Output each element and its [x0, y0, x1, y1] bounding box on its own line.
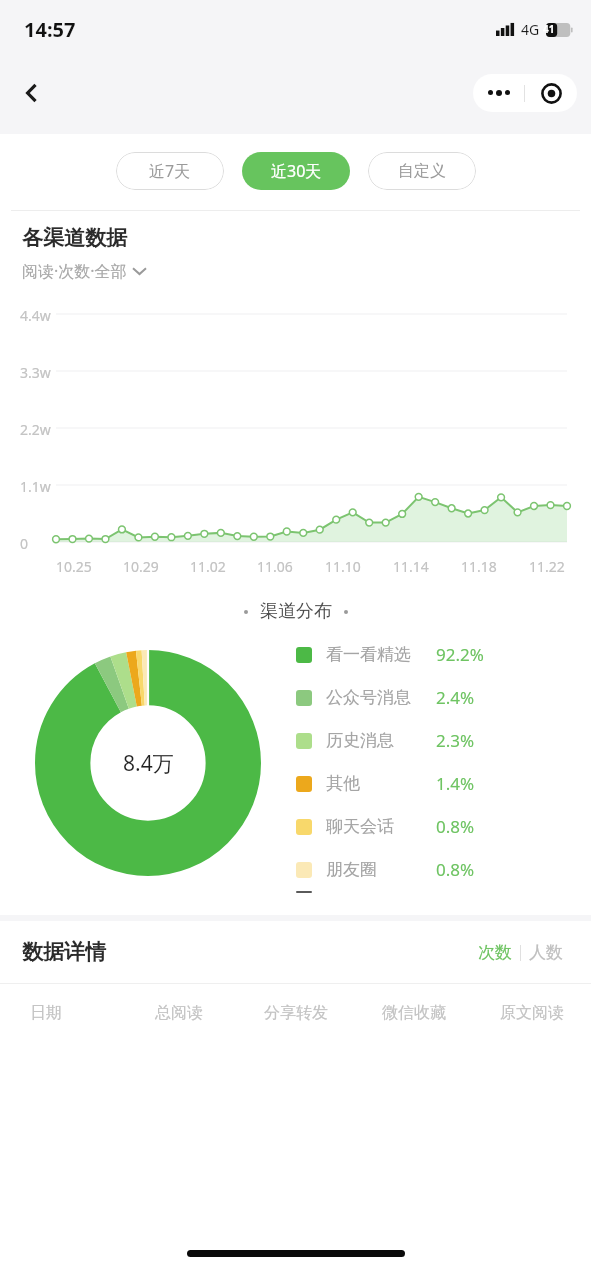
staticText: 公众号消息: [326, 687, 411, 708]
staticText: 10.29: [123, 557, 159, 576]
button[interactable]: 近7天: [116, 152, 224, 190]
staticText: 数据详情: [22, 939, 106, 965]
staticText: 聊天会话: [326, 816, 394, 837]
staticText: 近30天: [271, 160, 322, 182]
staticText: 3.3w: [20, 363, 51, 382]
button[interactable]: Back: [10, 71, 54, 115]
staticText: 8.4万: [123, 749, 174, 778]
staticText: 次数: [478, 942, 512, 963]
staticText: 41: [543, 22, 555, 36]
staticText: 0.8%: [436, 815, 475, 838]
button[interactable]: 朋友圈: [296, 848, 591, 891]
staticText: 11.18: [461, 557, 497, 576]
staticText: 看一看精选: [326, 644, 411, 665]
staticText: 11.10: [325, 557, 361, 576]
staticText: 阅读·次数·全部: [22, 260, 127, 282]
staticText: 历史消息: [326, 730, 394, 751]
staticText: 其他: [326, 773, 360, 794]
button[interactable]: 阅读·次数·全部: [22, 260, 146, 282]
button[interactable]: 聊天会话: [296, 805, 591, 848]
staticText: 总阅读: [155, 1003, 203, 1023]
button[interactable]: 其他: [296, 762, 591, 805]
staticText: 朋友圈: [326, 859, 377, 880]
staticText: 近7天: [149, 160, 191, 182]
button[interactable]: 公众号消息: [296, 676, 591, 719]
staticText: 1.4%: [436, 772, 475, 795]
button[interactable]: 历史消息: [296, 719, 591, 762]
button[interactable]: More: [473, 74, 524, 112]
staticText: 日期: [30, 1003, 62, 1023]
staticText: 0.8%: [436, 858, 475, 881]
staticText: 92.2%: [436, 643, 484, 666]
staticText: 渠道分布: [260, 600, 332, 623]
staticText: 11.02: [190, 557, 226, 576]
staticText: 11.14: [393, 557, 429, 576]
staticText: 2.2w: [20, 420, 51, 439]
staticText: 14:57: [24, 16, 76, 43]
staticText: 分享转发: [264, 1003, 328, 1023]
staticText: 10.25: [56, 557, 92, 576]
staticText: 2.4%: [436, 686, 475, 709]
button[interactable]: Close: [525, 74, 577, 112]
button[interactable]: 看一看精选: [296, 633, 591, 676]
staticText: 4G: [521, 20, 540, 39]
button[interactable]: 自定义: [368, 152, 476, 190]
staticText: 原文阅读: [500, 1003, 564, 1023]
button[interactable]: 人数: [521, 942, 571, 963]
staticText: 1.1w: [20, 477, 51, 496]
button[interactable]: 近30天: [242, 152, 350, 190]
staticText: 自定义: [398, 161, 446, 181]
button[interactable]: 搜一搜: [296, 891, 591, 893]
button[interactable]: 次数: [470, 942, 520, 963]
staticText: 11.22: [529, 557, 565, 576]
staticText: 各渠道数据: [22, 225, 127, 251]
staticText: 人数: [529, 942, 563, 963]
staticText: 2.3%: [436, 729, 475, 752]
staticText: 4.4w: [20, 306, 51, 325]
staticText: 0: [20, 534, 29, 553]
staticText: 11.06: [257, 557, 293, 576]
staticText: 微信收藏: [382, 1003, 446, 1023]
